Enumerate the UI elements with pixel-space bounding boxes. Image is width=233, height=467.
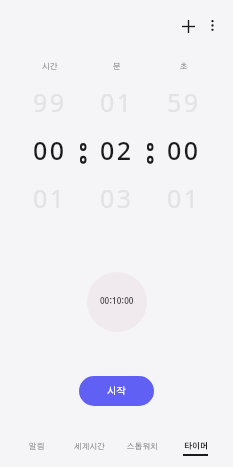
- staticText: 02: [100, 133, 134, 167]
- button[interactable]: 스톱워치: [116, 438, 169, 467]
- button[interactable]: More options: [197, 10, 227, 40]
- button[interactable]: 타이머: [169, 438, 222, 467]
- button[interactable]: 세계시간: [63, 438, 116, 467]
- button[interactable]: 00:10:00: [87, 272, 147, 332]
- staticText: 타이머: [184, 443, 208, 451]
- button[interactable]: 알림: [11, 438, 63, 467]
- staticText: 01: [100, 85, 134, 119]
- staticText: 초: [180, 63, 188, 71]
- staticText: 알림: [29, 443, 45, 451]
- staticText: 세계시간: [74, 443, 105, 451]
- staticText: 01: [33, 181, 67, 215]
- staticText: 00:10:00: [100, 298, 134, 306]
- staticText: 00: [167, 133, 201, 167]
- staticText: 분: [113, 63, 121, 71]
- staticText: 스톱워치: [127, 443, 158, 451]
- staticText: 03: [100, 181, 134, 215]
- staticText: 99: [33, 85, 67, 119]
- button[interactable]: 시작: [79, 376, 154, 406]
- staticText: 시간: [42, 63, 58, 71]
- button[interactable]: Add timer: [173, 11, 203, 41]
- staticText: 01: [167, 181, 201, 215]
- staticText: 00: [33, 133, 67, 167]
- staticText: 59: [167, 85, 201, 119]
- staticText: 시작: [107, 386, 126, 396]
